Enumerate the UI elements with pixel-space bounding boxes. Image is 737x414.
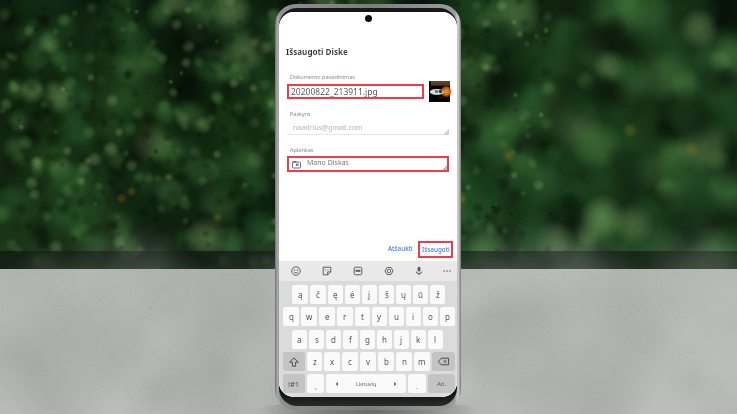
button[interactable]: d	[326, 330, 341, 349]
staticText: g	[365, 334, 370, 345]
staticText: c	[348, 356, 352, 367]
button[interactable]: o	[423, 307, 438, 326]
staticText: Išsaugoti	[422, 245, 450, 254]
staticText: š	[385, 289, 389, 300]
button[interactable]: Išsaugoti	[418, 241, 453, 258]
staticText: Išsaugoti Diske	[286, 46, 348, 57]
button[interactable]: i	[406, 307, 421, 326]
button[interactable]: e	[319, 307, 335, 326]
staticText: q	[289, 311, 294, 322]
staticText: n	[402, 356, 407, 367]
staticText: m	[418, 356, 426, 367]
button[interactable]: ė	[345, 285, 360, 304]
staticText: p	[445, 311, 450, 322]
button[interactable]: t	[355, 307, 370, 326]
button[interactable]: ,	[307, 374, 324, 393]
staticText: u	[394, 311, 399, 322]
button[interactable]: Atšaukti	[384, 241, 416, 256]
staticText: i	[412, 311, 415, 322]
button[interactable]: r	[337, 307, 353, 326]
staticText: ū	[418, 289, 423, 300]
button[interactable]: f	[343, 330, 358, 349]
button[interactable]: k	[411, 330, 426, 349]
button[interactable]: h	[377, 330, 392, 349]
staticText: t	[361, 311, 364, 322]
staticText: o	[428, 311, 433, 322]
button[interactable]: Stickers	[319, 263, 335, 279]
staticText: d	[331, 334, 336, 345]
button[interactable]: s	[309, 330, 324, 349]
staticText: j	[368, 289, 371, 300]
staticText: Lietuvių	[356, 380, 377, 387]
button[interactable]: x	[324, 352, 340, 371]
staticText: č	[316, 289, 320, 300]
staticText: ž	[436, 289, 440, 300]
button[interactable]: p	[440, 307, 455, 326]
staticText: !#1	[288, 379, 300, 389]
staticText: Atl.	[437, 380, 447, 388]
button[interactable]: j	[362, 285, 377, 304]
button[interactable]: Mano Diskas	[287, 156, 449, 172]
button[interactable]: ę	[328, 285, 343, 304]
button[interactable]: !#1	[283, 374, 305, 393]
button[interactable]: l	[428, 330, 443, 349]
button[interactable]: More options	[439, 263, 455, 279]
staticText: 20200822_213911.jpg	[291, 86, 378, 98]
staticText: Mano Diskas	[307, 158, 349, 168]
staticText: y	[377, 311, 382, 322]
staticText: ė	[350, 289, 355, 300]
staticText: Atšaukti	[388, 244, 413, 253]
button[interactable]: c	[342, 352, 358, 371]
button[interactable]: ą	[292, 285, 308, 304]
staticText: ą	[298, 289, 303, 300]
button[interactable]: č	[310, 285, 326, 304]
button[interactable]: Space, Lietuvių	[326, 374, 406, 393]
staticText: naadrius@gmail.com	[293, 123, 363, 133]
staticText: b	[384, 356, 389, 367]
button[interactable]: Shift	[283, 352, 305, 371]
button[interactable]: Settings	[381, 263, 397, 279]
staticText: Dokumento pavadinimas	[290, 73, 355, 80]
staticText: x	[330, 356, 335, 367]
staticText: Paskyra	[290, 110, 311, 117]
button[interactable]: GIF	[350, 263, 366, 279]
staticText: r	[343, 311, 347, 322]
staticText: l	[434, 334, 437, 345]
button[interactable]: ū	[413, 285, 428, 304]
button[interactable]: z	[307, 352, 322, 371]
button[interactable]: ų	[396, 285, 411, 304]
button[interactable]: b	[378, 352, 394, 371]
button[interactable]: a	[292, 330, 307, 349]
button[interactable]: Emoji	[288, 263, 304, 279]
button[interactable]: Backspace	[432, 352, 455, 371]
button[interactable]: g	[360, 330, 375, 349]
staticText: f	[349, 334, 352, 345]
button[interactable]: q	[283, 307, 299, 326]
staticText: ę	[333, 289, 338, 300]
button[interactable]: naadrius@gmail.com	[287, 120, 449, 135]
button[interactable]: y	[372, 307, 387, 326]
button[interactable]: š	[379, 285, 394, 304]
staticText: v	[366, 356, 371, 367]
button[interactable]: v	[360, 352, 376, 371]
staticText: a	[297, 334, 302, 345]
button[interactable]: Atl.	[428, 374, 455, 393]
staticText: e	[325, 311, 330, 322]
button[interactable]: Voice input	[411, 263, 427, 279]
staticText: z	[313, 356, 317, 367]
button[interactable]: u	[389, 307, 404, 326]
staticText: Aplankas	[290, 146, 314, 153]
button[interactable]: .	[408, 374, 426, 393]
button[interactable]: w	[301, 307, 317, 326]
button[interactable]: n	[396, 352, 412, 371]
staticText: h	[382, 334, 387, 345]
staticText: k	[416, 334, 421, 345]
button[interactable]: m	[414, 352, 430, 371]
staticText: ,	[315, 382, 317, 392]
button[interactable]: j	[394, 330, 409, 349]
staticText: .	[416, 382, 418, 392]
button[interactable]: 20200822_213911.jpg	[287, 84, 424, 99]
staticText: w	[306, 311, 313, 322]
button[interactable]: ž	[430, 285, 445, 304]
staticText: j	[400, 334, 403, 345]
